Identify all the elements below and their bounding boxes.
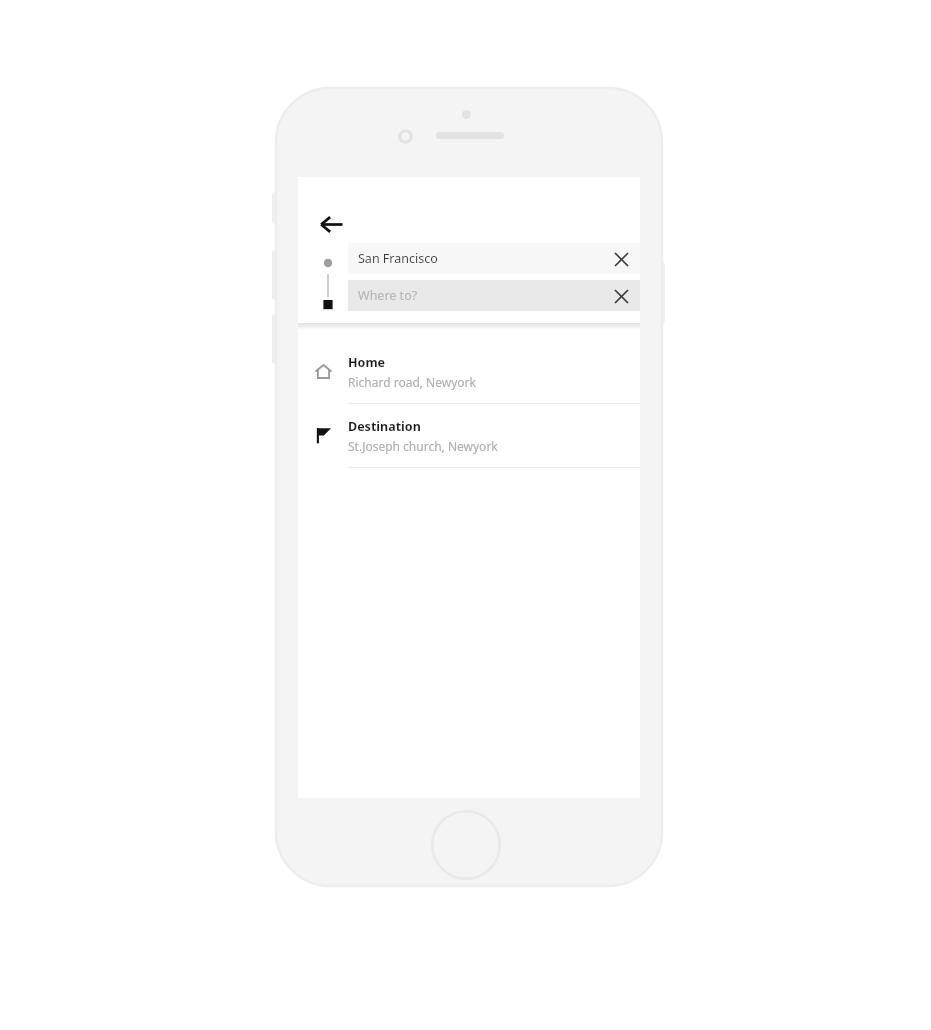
button[interactable]: Clear San Francisco [610, 248, 632, 270]
staticText: Where to? [358, 287, 610, 304]
staticText: Home [348, 354, 386, 371]
button[interactable]: San Francisco [348, 243, 640, 274]
button[interactable]: Home [298, 340, 640, 404]
staticText: San Francisco [358, 250, 610, 267]
staticText: Destination [348, 418, 421, 435]
button[interactable]: Back [314, 207, 348, 241]
button[interactable]: Destination [298, 404, 640, 468]
button[interactable]: Clear Where to? [610, 285, 632, 307]
button[interactable]: Where to? [348, 280, 640, 311]
staticText: Richard road, Newyork [348, 374, 476, 390]
staticText: St.Joseph church, Newyork [348, 438, 498, 454]
